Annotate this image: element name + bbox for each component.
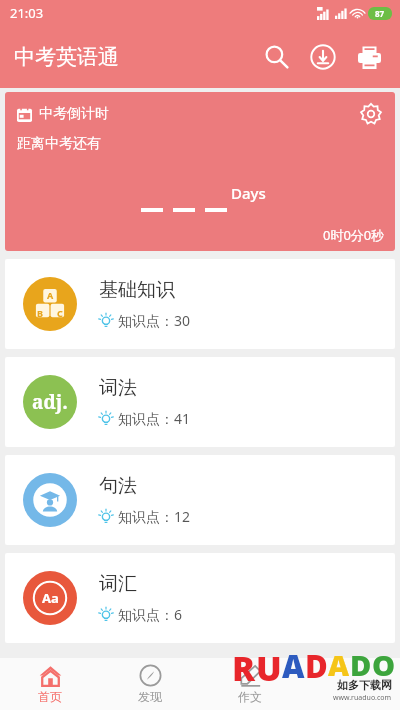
staticText: A — [282, 645, 305, 687]
staticText: D — [350, 645, 372, 684]
button[interactable]: A — [5, 259, 395, 349]
staticText: 87 — [375, 8, 385, 19]
staticText: B — [37, 307, 43, 319]
button[interactable]: Settings — [355, 98, 387, 130]
staticText: 0时0分0秒 — [323, 226, 385, 244]
staticText: 知识点：30 — [118, 311, 191, 330]
staticText: 句法 — [99, 474, 137, 498]
staticText: 知识点：6 — [118, 605, 183, 624]
staticText: 首页 — [38, 689, 62, 704]
button[interactable]: 句法 — [5, 455, 395, 545]
staticText: 中考倒计时 — [39, 105, 109, 123]
button[interactable]: 首页 — [0, 658, 100, 710]
staticText: A — [47, 289, 54, 301]
staticText: 发现 — [138, 689, 162, 704]
staticText: Days — [231, 183, 266, 203]
button[interactable]: Aa — [5, 553, 395, 643]
staticText: 词法 — [99, 376, 137, 400]
button[interactable]: Print — [346, 34, 392, 80]
staticText: www.ruaduo.com — [333, 693, 392, 703]
staticText: 知识点：12 — [118, 507, 191, 526]
staticText: 如多下载网 — [337, 678, 392, 692]
staticText: R — [232, 645, 256, 691]
staticText: C — [57, 307, 63, 319]
button[interactable]: 中考倒计时 — [5, 92, 395, 251]
button[interactable]: 发现 — [100, 658, 200, 710]
staticText: 知识点：41 — [118, 409, 191, 428]
staticText: 词汇 — [99, 572, 137, 596]
button[interactable]: Search — [254, 34, 300, 80]
button[interactable]: 作文 — [200, 658, 300, 710]
staticText: A — [328, 645, 350, 684]
staticText: 距离中考还有 — [17, 135, 101, 153]
staticText: adj. — [32, 389, 68, 415]
staticText: 21:03 — [10, 4, 44, 22]
staticText: Aa — [42, 589, 59, 607]
button[interactable]: adj. — [5, 357, 395, 447]
staticText: 中考英语通 — [14, 44, 119, 70]
staticText: D — [305, 645, 328, 687]
button[interactable]: Download — [300, 34, 346, 80]
staticText: O — [372, 645, 396, 684]
staticText: 基础知识 — [99, 278, 175, 302]
staticText: 作文 — [238, 689, 262, 704]
staticText: U — [256, 645, 282, 691]
